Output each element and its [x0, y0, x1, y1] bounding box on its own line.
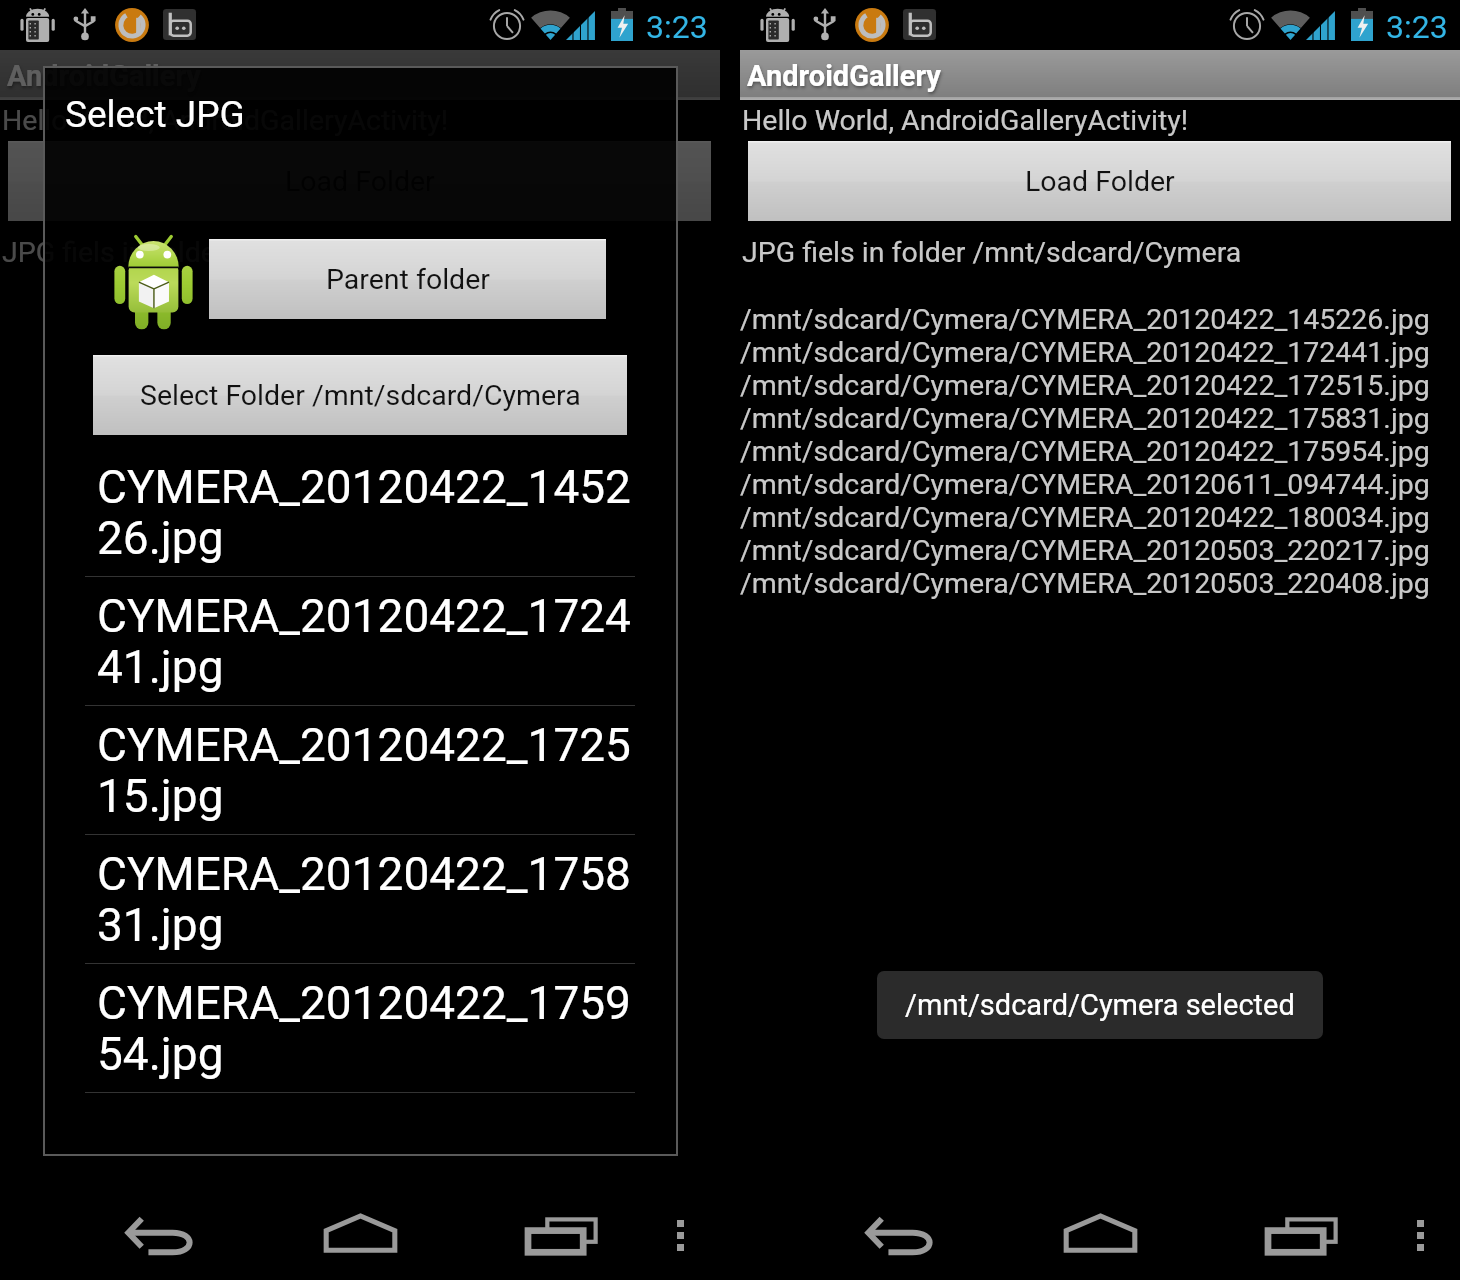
- button[interactable]: Parent folder: [209, 239, 606, 319]
- button[interactable]: CYMERA_20120422_172515.jpg: [43, 705, 678, 834]
- staticText: /mnt/sdcard/Cymera/CYMERA_20120611_09474…: [740, 468, 1430, 501]
- button[interactable]: Home: [1050, 1200, 1150, 1280]
- button[interactable]: CYMERA_20120422_172441.jpg: [43, 576, 678, 705]
- staticText: JPG fiels in folder /mnt/sdcard/Cymera: [742, 236, 1242, 269]
- staticText: CYMERA_20120422_175954.jpg: [97, 976, 649, 1081]
- staticText: /mnt/sdcard/Cymera/CYMERA_20120422_17244…: [740, 336, 1430, 369]
- button[interactable]: Home: [310, 1200, 410, 1280]
- staticText: JPG fiels in folder /mnt/sdcard/Cymera: [2, 236, 502, 269]
- staticText: Hello World, AndroidGalleryActivity!: [742, 104, 1189, 137]
- button[interactable]: CYMERA_20120422_145226.jpg: [43, 447, 678, 576]
- staticText: /mnt/sdcard/Cymera/CYMERA_20120422_18003…: [740, 501, 1430, 534]
- button[interactable]: Back: [850, 1200, 950, 1280]
- staticText: /mnt/sdcard/Cymera/CYMERA_20120422_14522…: [740, 303, 1430, 336]
- staticText: /mnt/sdcard/Cymera selected: [905, 988, 1295, 1022]
- button[interactable]: Back: [110, 1200, 210, 1280]
- button[interactable]: CYMERA_20120422_175954.jpg: [43, 963, 678, 1092]
- button[interactable]: Load Folder: [748, 141, 1451, 221]
- button[interactable]: More options: [650, 1200, 712, 1280]
- staticText: /mnt/sdcard/Cymera/CYMERA_20120503_22040…: [740, 567, 1430, 600]
- button[interactable]: Recent apps: [505, 1200, 605, 1280]
- staticText: 3:23: [1386, 8, 1448, 46]
- button[interactable]: Select Folder /mnt/sdcard/Cymera: [93, 355, 627, 435]
- staticText: Parent folder: [326, 263, 490, 296]
- button[interactable]: More options: [1390, 1200, 1452, 1280]
- staticText: /mnt/sdcard/Cymera/CYMERA_20120422_17251…: [740, 369, 1430, 402]
- staticText: CYMERA_20120422_172515.jpg: [97, 718, 649, 823]
- button[interactable]: Load Folder: [8, 141, 711, 221]
- staticText: CYMERA_20120422_145226.jpg: [97, 460, 649, 565]
- staticText: /mnt/sdcard/Cymera/CYMERA_20120422_17583…: [740, 402, 1430, 435]
- staticText: Select Folder /mnt/sdcard/Cymera: [140, 379, 581, 412]
- staticText: Load Folder: [1025, 165, 1175, 198]
- staticText: CYMERA_20120422_172441.jpg: [97, 589, 649, 694]
- staticText: Select JPG: [65, 93, 245, 136]
- button[interactable]: CYMERA_20120422_175831.jpg: [43, 834, 678, 963]
- button[interactable]: Recent apps: [1245, 1200, 1345, 1280]
- staticText: AndroidGallery: [7, 59, 201, 93]
- staticText: /mnt/sdcard/Cymera/CYMERA_20120422_17595…: [740, 435, 1430, 468]
- staticText: CYMERA_20120422_175831.jpg: [97, 847, 649, 952]
- staticText: 3:23: [646, 8, 708, 46]
- staticText: AndroidGallery: [747, 59, 941, 93]
- staticText: Hello World, AndroidGalleryActivity!: [2, 104, 449, 137]
- staticText: /mnt/sdcard/Cymera/CYMERA_20120503_22021…: [740, 534, 1430, 567]
